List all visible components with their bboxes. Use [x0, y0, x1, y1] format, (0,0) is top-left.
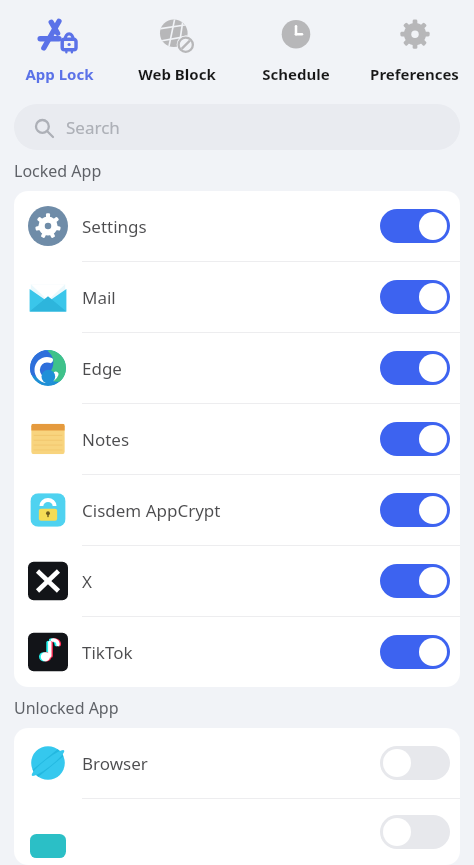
staticText: Search — [66, 116, 120, 139]
staticText: Preferences — [370, 64, 459, 84]
button[interactable]: App Lock — [0, 0, 118, 104]
button[interactable]: Web Block — [118, 0, 236, 104]
staticText: Locked App — [14, 160, 102, 182]
button[interactable]: Toggle off — [380, 815, 450, 849]
button[interactable]: Toggle off — [380, 746, 450, 780]
staticText: Browser — [82, 752, 380, 775]
button[interactable]: X — [14, 546, 460, 617]
button[interactable]: Browser — [14, 728, 460, 799]
button[interactable]: Toggle off — [14, 799, 460, 865]
other: Schedule — [273, 13, 319, 59]
button[interactable]: Schedule — [236, 0, 355, 104]
button[interactable]: Toggle on — [380, 635, 450, 669]
other: Web Block — [154, 13, 200, 59]
staticText: Schedule — [262, 64, 330, 84]
button[interactable]: Notes — [14, 404, 460, 475]
staticText: Unlocked App — [14, 697, 119, 719]
button[interactable]: Mail — [14, 262, 460, 333]
staticText: X — [82, 570, 380, 593]
button[interactable]: Cisdem AppCrypt — [14, 475, 460, 546]
staticText: Mail — [82, 286, 380, 309]
other: Preferences — [392, 13, 438, 59]
other: App Lock — [36, 13, 82, 59]
button[interactable]: Edge — [14, 333, 460, 404]
staticText: Notes — [82, 428, 380, 451]
button[interactable]: Preferences — [355, 0, 474, 104]
staticText: Cisdem AppCrypt — [82, 499, 380, 522]
staticText: Web Block — [138, 64, 216, 84]
button[interactable]: Settings — [14, 191, 460, 262]
staticText: App Lock — [25, 64, 94, 84]
staticText: TikTok — [82, 641, 380, 664]
button[interactable]: Toggle on — [380, 351, 450, 385]
button[interactable]: Toggle on — [380, 493, 450, 527]
staticText: Settings — [82, 215, 380, 238]
button[interactable]: TikTok — [14, 617, 460, 687]
staticText: Edge — [82, 357, 380, 380]
button[interactable]: Toggle on — [380, 280, 450, 314]
button[interactable]: Toggle on — [380, 422, 450, 456]
button[interactable]: Toggle on — [380, 209, 450, 243]
button[interactable]: Search — [14, 104, 460, 150]
button[interactable]: Toggle on — [380, 564, 450, 598]
